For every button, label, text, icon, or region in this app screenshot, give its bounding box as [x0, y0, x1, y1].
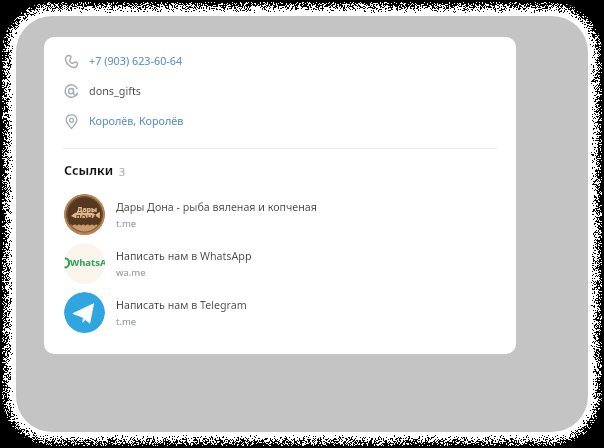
staticText: +7 (903) 623-60-64 [89, 53, 183, 68]
staticText: WhatsApp [70, 256, 105, 269]
staticText: Королёв, Королёв [89, 113, 184, 128]
other: Username [64, 84, 79, 99]
other: Location [64, 114, 79, 129]
button[interactable]: Написать нам в Telegram [44, 288, 516, 337]
staticText: Написать нам в Telegram [116, 298, 247, 313]
other: Call phone number [64, 54, 79, 69]
staticText: 3 [119, 165, 126, 179]
staticText: wa.me [116, 266, 146, 279]
staticText: t.me [116, 315, 137, 328]
button[interactable]: Call phone number [44, 46, 516, 76]
staticText: ДОНА [75, 212, 98, 222]
staticText: dons_gifts [89, 83, 142, 98]
staticText: Дары [77, 205, 98, 215]
button[interactable]: Дары [44, 190, 516, 239]
button[interactable]: WhatsApp [44, 239, 516, 288]
button[interactable]: Location [44, 106, 516, 136]
staticText: Написать нам в WhatsApp [116, 249, 252, 264]
staticText: Дары Дона - рыба вяленая и копченая [116, 200, 317, 215]
button[interactable]: Username [44, 76, 516, 106]
staticText: Ссылки [64, 162, 114, 179]
staticText: t.me [116, 217, 137, 230]
